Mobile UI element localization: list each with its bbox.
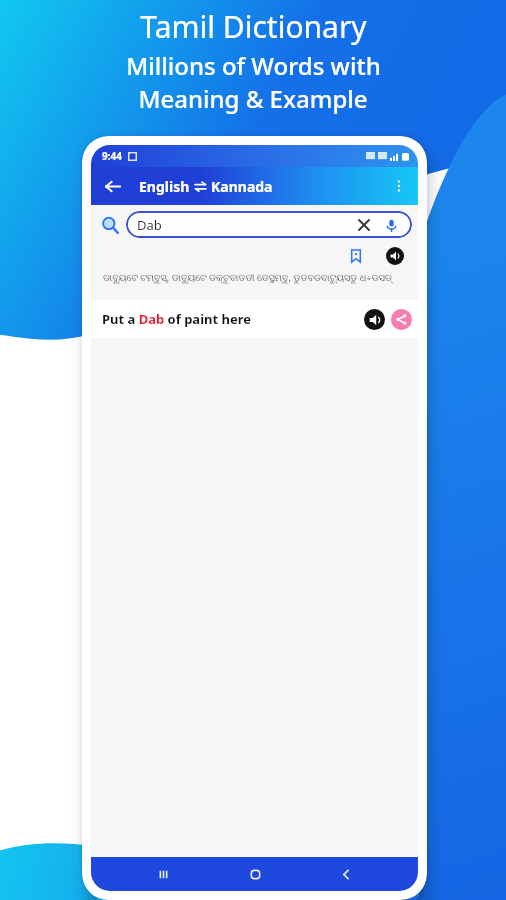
button[interactable]: Clear (354, 215, 374, 235)
staticText: 9:44 (102, 149, 122, 163)
button[interactable]: Voice search (381, 215, 401, 235)
staticText: Meaning & Example (138, 82, 368, 115)
staticText: English (139, 177, 190, 196)
button[interactable]: Bookmark (344, 244, 368, 268)
button[interactable]: Put a Dab of paint here (91, 300, 418, 338)
staticText: ଡାବ୍ୟୁଟେ ଟମ୍ବୁସ୍, ଡାବ୍ୟୁଟେ ଡକ୍ଟୁବାଡଡୀ ଡେ… (103, 271, 402, 284)
button[interactable]: Back (95, 169, 129, 203)
staticText: Tamil Dictionary (140, 6, 367, 47)
staticText: Dab (137, 216, 354, 234)
button[interactable]: Play pronunciation (386, 247, 404, 265)
button[interactable]: Home (236, 857, 274, 891)
staticText: Kannada (211, 177, 273, 196)
button[interactable]: Dab (126, 211, 412, 238)
button[interactable]: Recent apps (144, 857, 182, 891)
button[interactable]: More options (383, 170, 415, 202)
button[interactable]: Back (327, 857, 365, 891)
staticText: Put a Dab of paint here (102, 310, 252, 328)
button[interactable]: Play pronunciation (364, 309, 385, 330)
button[interactable]: Search (97, 212, 123, 238)
staticText: Millions of Words with (126, 49, 381, 82)
button[interactable]: Share (391, 309, 412, 330)
